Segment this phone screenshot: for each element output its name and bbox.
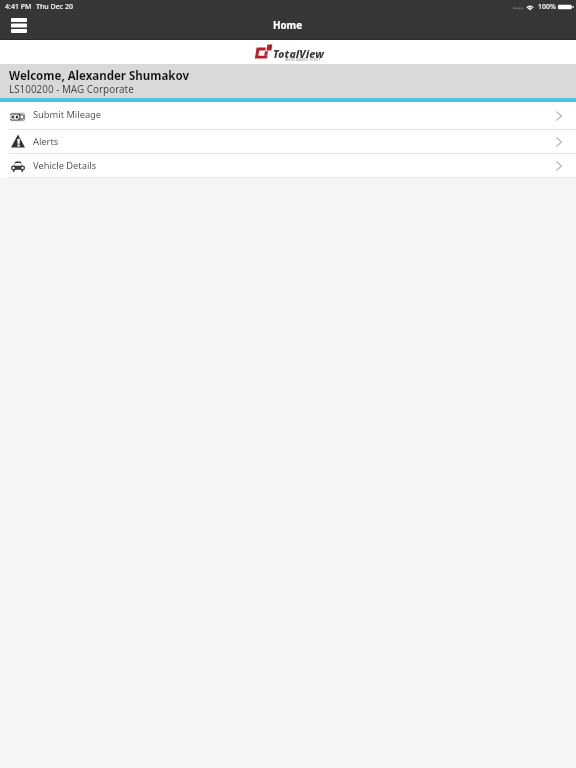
staticText: Submit Mileage — [33, 108, 102, 121]
staticText: TotalView — [273, 47, 324, 61]
staticText: Alerts — [33, 135, 59, 148]
staticText: Home — [273, 19, 303, 32]
staticText: 100% — [538, 2, 556, 12]
button[interactable]: Submit Mileage — [0, 102, 576, 129]
button[interactable]: Alerts — [0, 130, 576, 153]
staticText: MERCHANTS FLEET — [285, 57, 321, 62]
button[interactable]: Open navigation menu — [5, 14, 32, 37]
staticText: 4:41 PM — [5, 2, 32, 12]
staticText: Thu Dec 20 — [36, 2, 73, 12]
staticText: Vehicle Details — [33, 159, 97, 172]
staticText: Welcome, Alexander Shumakov — [9, 68, 189, 84]
staticText: LS100200 - MAG Corporate — [9, 82, 134, 95]
button[interactable]: Vehicle Details — [0, 154, 576, 177]
